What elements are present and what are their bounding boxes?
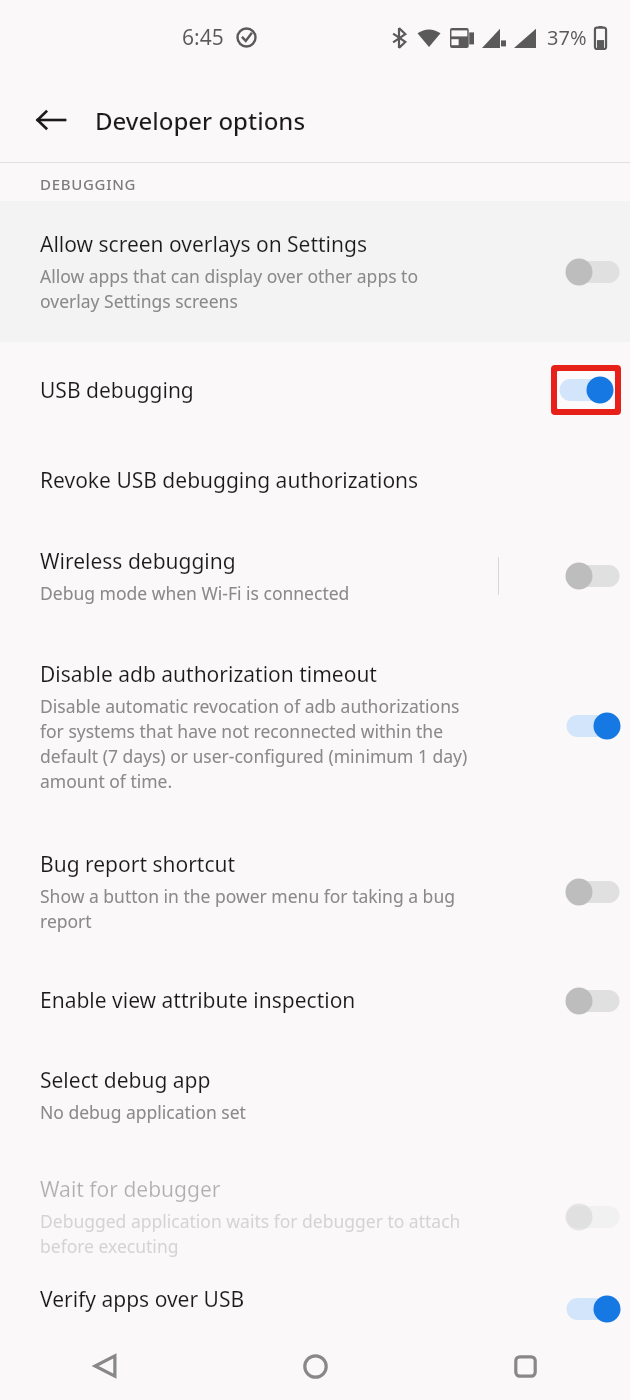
button[interactable]: Home <box>210 1332 420 1400</box>
button[interactable]: Back <box>0 1332 210 1400</box>
button[interactable]: Bug report shortcut <box>0 823 630 960</box>
button[interactable]: Verify apps over USB <box>0 1285 630 1332</box>
button[interactable]: Toggle off <box>565 255 621 289</box>
staticText: Wireless debugging <box>40 547 236 576</box>
button[interactable]: Wait for debugger <box>0 1148 630 1285</box>
staticText: Disable automatic revocation of adb auth… <box>40 694 480 793</box>
staticText: USB debugging <box>40 376 194 405</box>
button[interactable]: Back <box>22 91 80 149</box>
button[interactable]: Select debug app <box>0 1041 630 1148</box>
staticText: Developer options <box>95 104 306 137</box>
button[interactable]: Toggle on <box>558 373 614 407</box>
button[interactable]: Recent apps <box>420 1332 630 1400</box>
staticText: Select debug app <box>40 1066 211 1095</box>
staticText: 37% <box>547 24 587 51</box>
staticText: Show a button in the power menu for taki… <box>40 884 480 933</box>
staticText: Bug report shortcut <box>40 850 236 879</box>
button[interactable]: Allow screen overlays on Settings <box>0 201 630 342</box>
staticText: Debugged application waits for debugger … <box>40 1209 480 1258</box>
staticText: DEBUGGING <box>40 174 137 194</box>
staticText: Wait for debugger <box>40 1175 221 1204</box>
staticText: Disable adb authorization timeout <box>40 660 377 689</box>
button[interactable]: Disable adb authorization timeout <box>0 629 630 823</box>
button[interactable]: Wireless debugging <box>0 522 630 629</box>
staticText: 6:45 <box>182 23 224 52</box>
staticText: Allow screen overlays on Settings <box>40 230 367 259</box>
button[interactable]: Toggle off <box>565 875 621 909</box>
staticText: Revoke USB debugging authorizations <box>40 466 419 495</box>
staticText: Enable view attribute inspection <box>40 986 356 1015</box>
button[interactable]: Revoke USB debugging authorizations <box>0 438 630 522</box>
button[interactable]: Toggle off <box>565 559 621 593</box>
button[interactable]: USB debugging <box>0 342 630 438</box>
button[interactable]: Toggle on <box>565 709 621 743</box>
staticText: No debug application set <box>40 1100 246 1124</box>
button[interactable]: Toggle on <box>565 1292 621 1326</box>
button[interactable]: Toggle off <box>565 1200 621 1234</box>
staticText: Debug mode when Wi-Fi is connected <box>40 581 350 605</box>
staticText: Allow apps that can display over other a… <box>40 264 480 313</box>
button[interactable]: Enable view attribute inspection <box>0 960 630 1041</box>
button[interactable]: Toggle off <box>565 984 621 1018</box>
staticText: Verify apps over USB <box>40 1285 245 1314</box>
